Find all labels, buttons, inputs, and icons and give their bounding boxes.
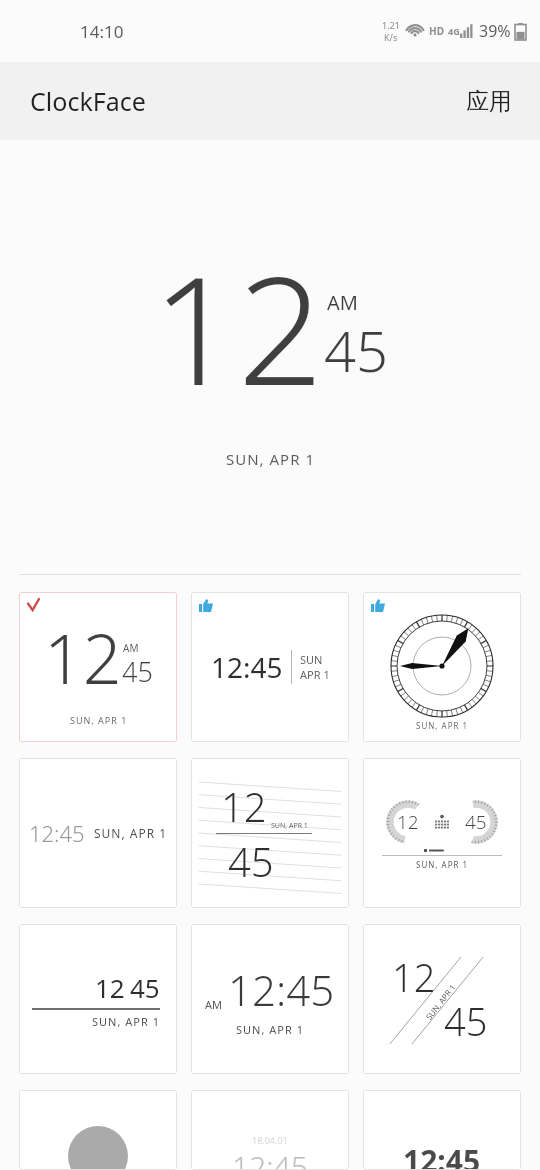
staticText: HD — [429, 24, 444, 38]
staticText: SUN, APR 1 — [271, 821, 308, 831]
button[interactable]: 12:45 — [363, 1090, 521, 1170]
button[interactable]: AM — [191, 924, 349, 1074]
button[interactable]: 12 — [19, 924, 177, 1074]
staticText: SUN, APR 1 — [236, 1022, 304, 1037]
staticText: 45 — [465, 809, 487, 835]
staticText: 12 — [152, 225, 324, 429]
staticText: 39% — [479, 20, 511, 42]
staticText: 1.21 — [382, 19, 400, 31]
staticText: SUN — [300, 652, 323, 667]
staticText: K/s — [384, 31, 398, 43]
staticText: SUN, APR 1 — [226, 449, 315, 469]
staticText: AM — [327, 289, 358, 316]
staticText: SUN, APR 1 — [423, 981, 458, 1022]
staticText: SUN, APR 1 — [416, 720, 469, 731]
staticText: 14:10 — [80, 20, 124, 43]
staticText: 12:45 — [403, 1140, 481, 1170]
button[interactable]: 12 — [363, 924, 521, 1074]
staticText: 12:45 — [29, 818, 85, 848]
button[interactable]: 18.04.01 — [191, 1090, 349, 1170]
button[interactable]: 12 — [191, 758, 349, 908]
staticText: 12:45 — [211, 648, 283, 686]
staticText: APR 1 — [300, 667, 330, 682]
staticText: 45 — [444, 995, 488, 1047]
staticText: AM — [205, 997, 223, 1012]
staticText: 12:45 — [228, 961, 335, 1018]
button[interactable]: 12:45 — [191, 592, 349, 742]
button[interactable]: 应用 — [438, 75, 540, 128]
staticText: SUN, APR 1 — [416, 859, 469, 870]
staticText: 应用 — [466, 87, 512, 116]
staticText: 45 — [130, 970, 160, 1005]
staticText: SUN, APR 1 — [70, 714, 128, 726]
staticText: 18.04.01 — [252, 1134, 288, 1146]
staticText: 12 — [95, 970, 125, 1005]
staticText: AM — [123, 641, 139, 655]
staticText: 12 — [397, 809, 419, 835]
staticText: 4G — [448, 25, 460, 37]
staticText: 45 — [228, 834, 274, 888]
staticText: 12:45 — [232, 1146, 308, 1170]
staticText: 45 — [122, 653, 153, 690]
staticText: ClockFace — [30, 84, 146, 118]
button[interactable]: 12 — [19, 592, 177, 742]
staticText: 12 — [221, 779, 267, 833]
staticText: SUN, APR 1 — [92, 1014, 160, 1029]
staticText: 12 — [392, 951, 436, 1003]
staticText: 12 — [44, 611, 122, 704]
button[interactable]: 12:45 — [19, 758, 177, 908]
staticText: 45 — [324, 312, 388, 388]
staticText: SUN, APR 1 — [94, 825, 168, 841]
button[interactable] — [19, 1090, 177, 1170]
button[interactable]: SUN, APR 1 — [363, 592, 521, 742]
button[interactable]: 12 — [363, 758, 521, 908]
